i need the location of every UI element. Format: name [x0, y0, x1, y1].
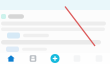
button[interactable]: Documents	[22, 53, 44, 64]
button[interactable]: Profile	[88, 53, 110, 64]
button[interactable]: Notifications	[66, 53, 88, 64]
button[interactable]: Home	[0, 53, 22, 64]
button[interactable]: Create	[44, 53, 66, 64]
